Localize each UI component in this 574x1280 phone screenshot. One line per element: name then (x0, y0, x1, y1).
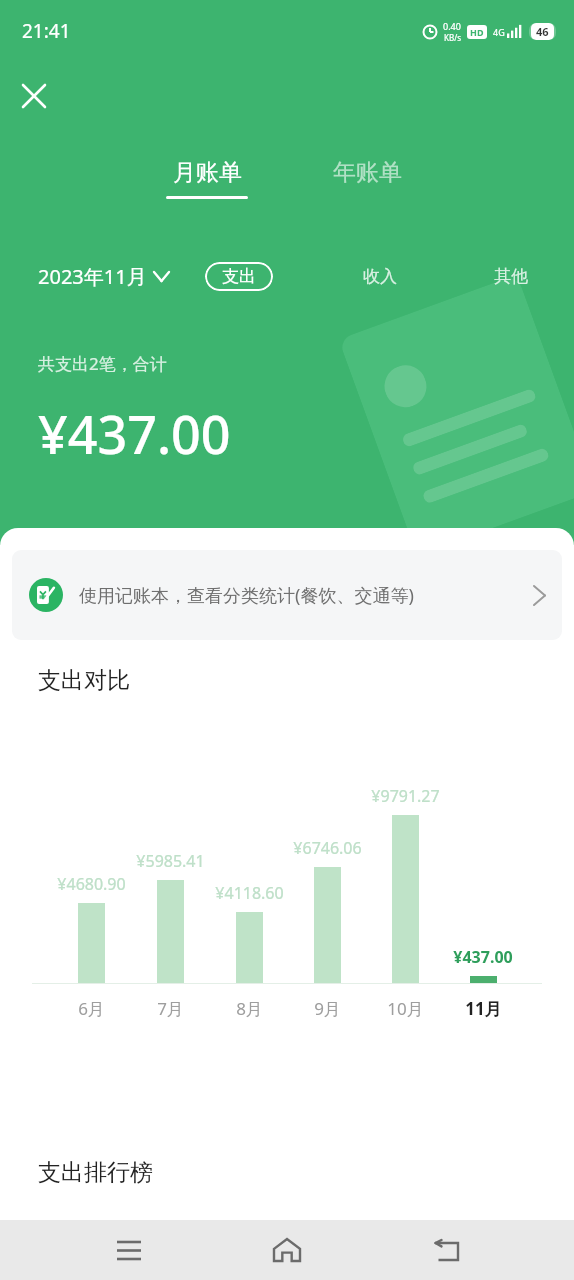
staticText: KB/s (444, 32, 461, 43)
staticText: 2023年11月 (38, 263, 147, 290)
button[interactable]: Recents (100, 1221, 158, 1279)
staticText: ¥5985.41 (136, 850, 205, 872)
staticText: ¥437.00 (453, 946, 513, 968)
staticText: ¥9791.27 (371, 785, 440, 807)
staticText: 使用记账本，查看分类统计(餐饮、交通等) (79, 583, 524, 608)
staticText: 支出 (222, 266, 256, 287)
staticText: 46 (536, 24, 549, 39)
staticText: ¥437.00 (38, 398, 231, 469)
staticText: 21:41 (22, 18, 71, 44)
staticText: 10月 (387, 997, 424, 1020)
staticText: 4G (493, 26, 505, 38)
button[interactable]: 2023年11月 (38, 263, 169, 290)
staticText: 其他 (494, 266, 528, 287)
button[interactable]: 年账单 (310, 158, 424, 187)
staticText: 0.40 (443, 20, 461, 32)
staticText: 11月 (465, 997, 502, 1020)
staticText: 月账单 (173, 158, 242, 187)
staticText: 8月 (236, 997, 263, 1020)
staticText: 9月 (314, 997, 341, 1020)
button[interactable]: Close (12, 74, 56, 118)
staticText: 收入 (363, 266, 397, 287)
button[interactable]: 使用记账本，查看分类统计(餐饮、交通等) (12, 550, 562, 640)
button[interactable]: 其他 (486, 258, 536, 295)
button[interactable]: Back (416, 1221, 474, 1279)
staticText: 共支出2笔，合计 (38, 352, 167, 375)
staticText: ¥4118.60 (215, 882, 284, 904)
staticText: 6月 (78, 997, 105, 1020)
staticText: 年账单 (333, 158, 402, 187)
staticText: 支出排行榜 (38, 1158, 153, 1187)
button[interactable]: Home (258, 1221, 316, 1279)
staticText: ¥6746.06 (293, 837, 362, 859)
button[interactable]: 收入 (355, 258, 405, 295)
staticText: 7月 (157, 997, 184, 1020)
button[interactable]: 支出 (205, 262, 273, 291)
staticText: 支出对比 (38, 666, 130, 695)
button[interactable]: 月账单 (150, 158, 264, 199)
staticText: HD (470, 26, 484, 38)
staticText: ¥4680.90 (57, 873, 126, 895)
